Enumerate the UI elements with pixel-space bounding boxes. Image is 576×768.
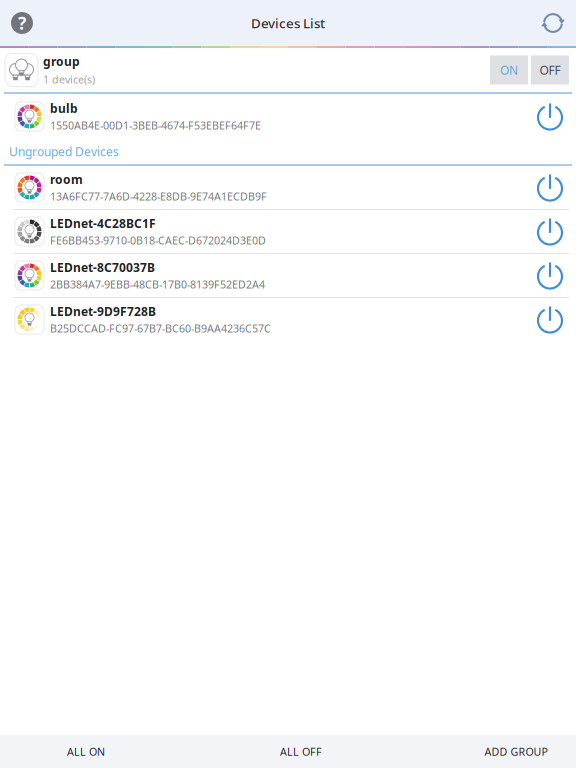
staticText: bulb <box>50 100 78 116</box>
staticText: Devices List <box>251 14 325 32</box>
button[interactable]: LEDnet-4C28BC1F <box>0 210 576 253</box>
button[interactable]: room <box>0 166 576 209</box>
staticText: Ungrouped Devices <box>9 143 119 159</box>
button[interactable]: ALL OFF <box>246 735 356 768</box>
staticText: ALL OFF <box>280 744 322 759</box>
staticText: ON <box>500 62 518 78</box>
staticText: 2BB384A7-9EBB-48CB-17B0-8139F52ED2A4 <box>50 277 265 292</box>
staticText: FE6BB453-9710-0B18-CAEC-D672024D3E0D <box>50 233 266 248</box>
staticText: ? <box>18 11 26 34</box>
staticText: 13A6FC77-7A6D-4228-E8DB-9E74A1ECDB9F <box>50 189 267 204</box>
staticText: B25DCCAD-FC97-67B7-BC60-B9AA4236C57C <box>50 321 271 336</box>
staticText: OFF <box>539 62 560 78</box>
staticText: ADD GROUP <box>484 744 547 759</box>
button[interactable]: ALL ON <box>31 735 141 768</box>
button[interactable]: LEDnet-8C70037B <box>0 254 576 297</box>
staticText: LEDnet-8C70037B <box>50 259 155 275</box>
staticText: ALL ON <box>67 744 105 759</box>
staticText: LEDnet-4C28BC1F <box>50 215 156 231</box>
staticText: 1 device(s) <box>43 72 95 87</box>
staticText: LEDnet-9D9F728B <box>50 303 156 319</box>
staticText: group <box>43 53 80 69</box>
button[interactable]: ADD GROUP <box>461 735 571 768</box>
staticText: room <box>50 171 83 187</box>
button[interactable]: Help <box>0 1 44 45</box>
button[interactable]: LEDnet-9D9F728B <box>0 298 576 341</box>
button[interactable]: bulb <box>0 94 576 139</box>
button[interactable]: group <box>0 48 576 92</box>
staticText: 1550AB4E-00D1-3BEB-4674-F53EBEF64F7E <box>50 118 261 133</box>
button[interactable]: Refresh <box>530 1 576 45</box>
